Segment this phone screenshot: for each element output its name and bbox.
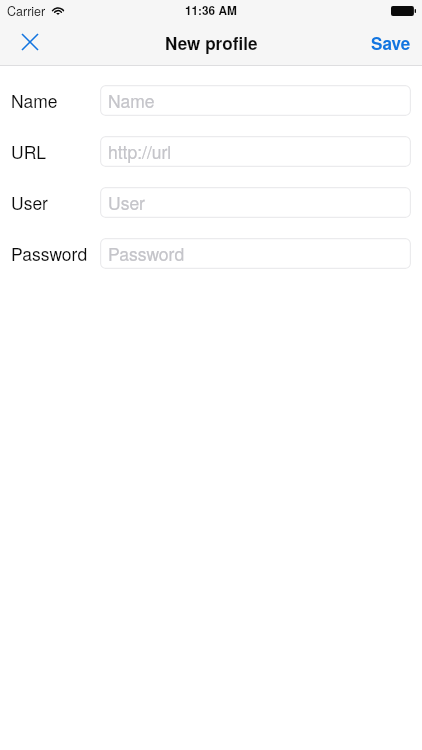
button[interactable]: User text field <box>100 187 411 218</box>
staticText: Name <box>108 88 155 113</box>
staticText: Carrier <box>7 2 46 20</box>
staticText: User <box>108 190 145 215</box>
staticText: Name <box>11 88 58 113</box>
button[interactable]: Save <box>359 21 422 65</box>
button[interactable]: Password text field <box>100 238 411 269</box>
button[interactable]: URL text field <box>100 136 411 167</box>
button[interactable]: Close <box>8 21 50 65</box>
staticText: URL <box>11 139 46 164</box>
staticText: Save <box>371 31 411 55</box>
other: Battery full <box>391 6 416 16</box>
staticText: http://url <box>108 139 172 164</box>
staticText: Password <box>11 241 88 266</box>
button[interactable]: Name text field <box>100 85 411 116</box>
staticText: 11:36 AM <box>185 2 237 19</box>
staticText: User <box>11 190 48 215</box>
staticText: Password <box>108 241 185 266</box>
staticText: New profile <box>165 31 258 55</box>
